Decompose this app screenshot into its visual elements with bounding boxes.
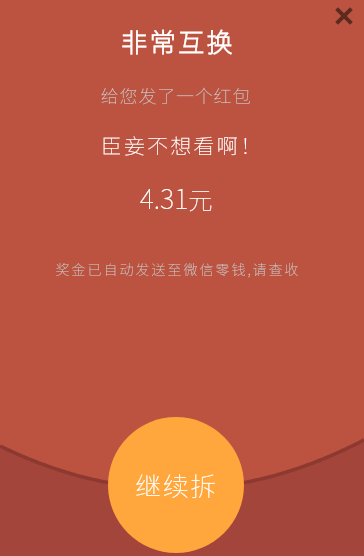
staticText: 给您发了一个红包 [0,82,358,108]
staticText: 继续拆 [135,466,218,504]
button[interactable]: Close [328,0,360,32]
staticText: 4.31元 [0,178,358,217]
button[interactable]: 继续拆 [108,417,244,553]
staticText: 非常互换 [0,22,360,60]
staticText: 奖金已自动发送至微信零钱,请查收 [0,259,360,279]
staticText: 臣妾不想看啊！ [0,130,364,160]
